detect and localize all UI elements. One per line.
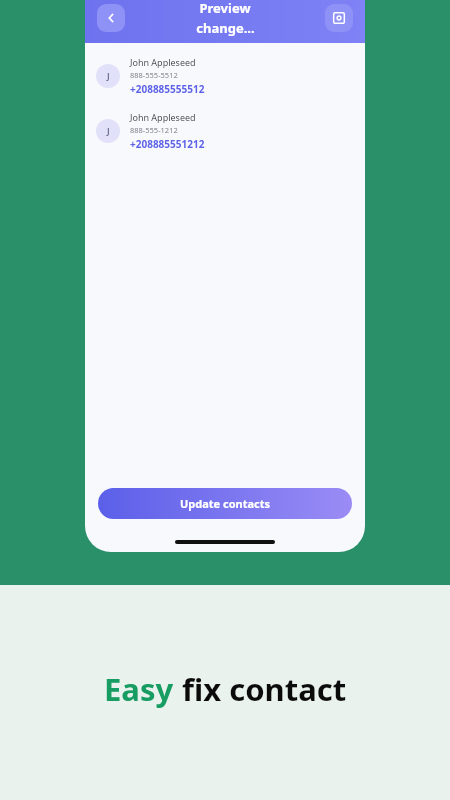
staticText: Easy [104, 668, 174, 710]
staticText: 888-555-5512 [130, 70, 178, 80]
button[interactable]: Save changes [325, 4, 353, 32]
staticText: 888-555-1212 [130, 125, 178, 135]
staticText: Preview [199, 0, 251, 17]
staticText: fix contact [182, 668, 347, 710]
staticText: J [107, 70, 110, 82]
staticText: +208885551212 [130, 137, 205, 151]
button[interactable]: Back [97, 4, 125, 32]
staticText: J [107, 125, 110, 137]
button[interactable]: Update contacts [98, 488, 352, 519]
button[interactable]: J [85, 106, 365, 156]
staticText: John Appleseed [130, 56, 196, 68]
staticText: +208885555512 [130, 82, 205, 96]
staticText: change... [196, 19, 255, 37]
staticText: Update contacts [180, 496, 271, 511]
staticText: John Appleseed [130, 111, 196, 123]
button[interactable]: J [85, 51, 365, 101]
